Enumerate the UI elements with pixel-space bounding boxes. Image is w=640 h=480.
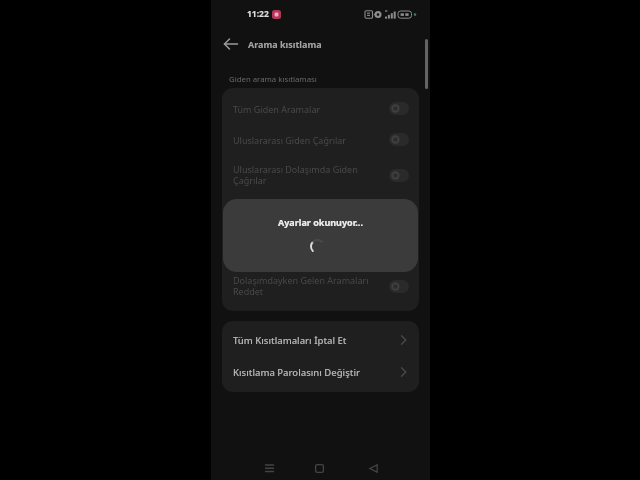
button[interactable]: Uluslararası Dolaşımda Gelen Çağrılar [222,226,419,266]
button[interactable]: Uluslararası Giden Çağrılar [222,124,419,155]
button[interactable]: Home [305,455,333,480]
staticText: 11:22 [247,8,269,20]
staticText: Kısıtlama Parolasını Değiştir [233,366,399,379]
staticText: Arama kısıtlama [248,38,322,50]
button[interactable]: Kısıtlama Parolasını Değiştir [222,356,419,388]
staticText: Uluslararası Giden Çağrılar [233,134,383,146]
button[interactable]: Tüm Giden Aramalar [222,93,419,124]
staticText: Tüm Kısıtlamaları İptal Et [233,334,399,347]
button[interactable]: Dolaşımdayken Gelen Aramaları Reddet [222,266,419,306]
button[interactable]: Back [219,32,243,56]
staticText: Uluslararası Dolaşımda Giden Çağrılar [233,163,383,187]
staticText: Dolaşımdayken Gelen Aramaları Reddet [233,274,383,298]
staticText: Giden arama kısıtlaması [229,74,317,85]
button[interactable]: Tüm Kısıtlamaları İptal Et [222,324,419,356]
button[interactable]: Recents [255,455,283,480]
staticText: Uluslararası Dolaşımda Gelen Çağrılar [233,234,383,258]
button[interactable]: Uluslararası Dolaşımda Giden Çağrılar [222,155,419,195]
button[interactable]: Back [359,455,387,480]
button[interactable]: Gelen Aramalar [222,195,419,226]
staticText: Ayarlar okunuyor... [278,216,363,228]
staticText: Tüm Giden Aramalar [233,103,383,115]
